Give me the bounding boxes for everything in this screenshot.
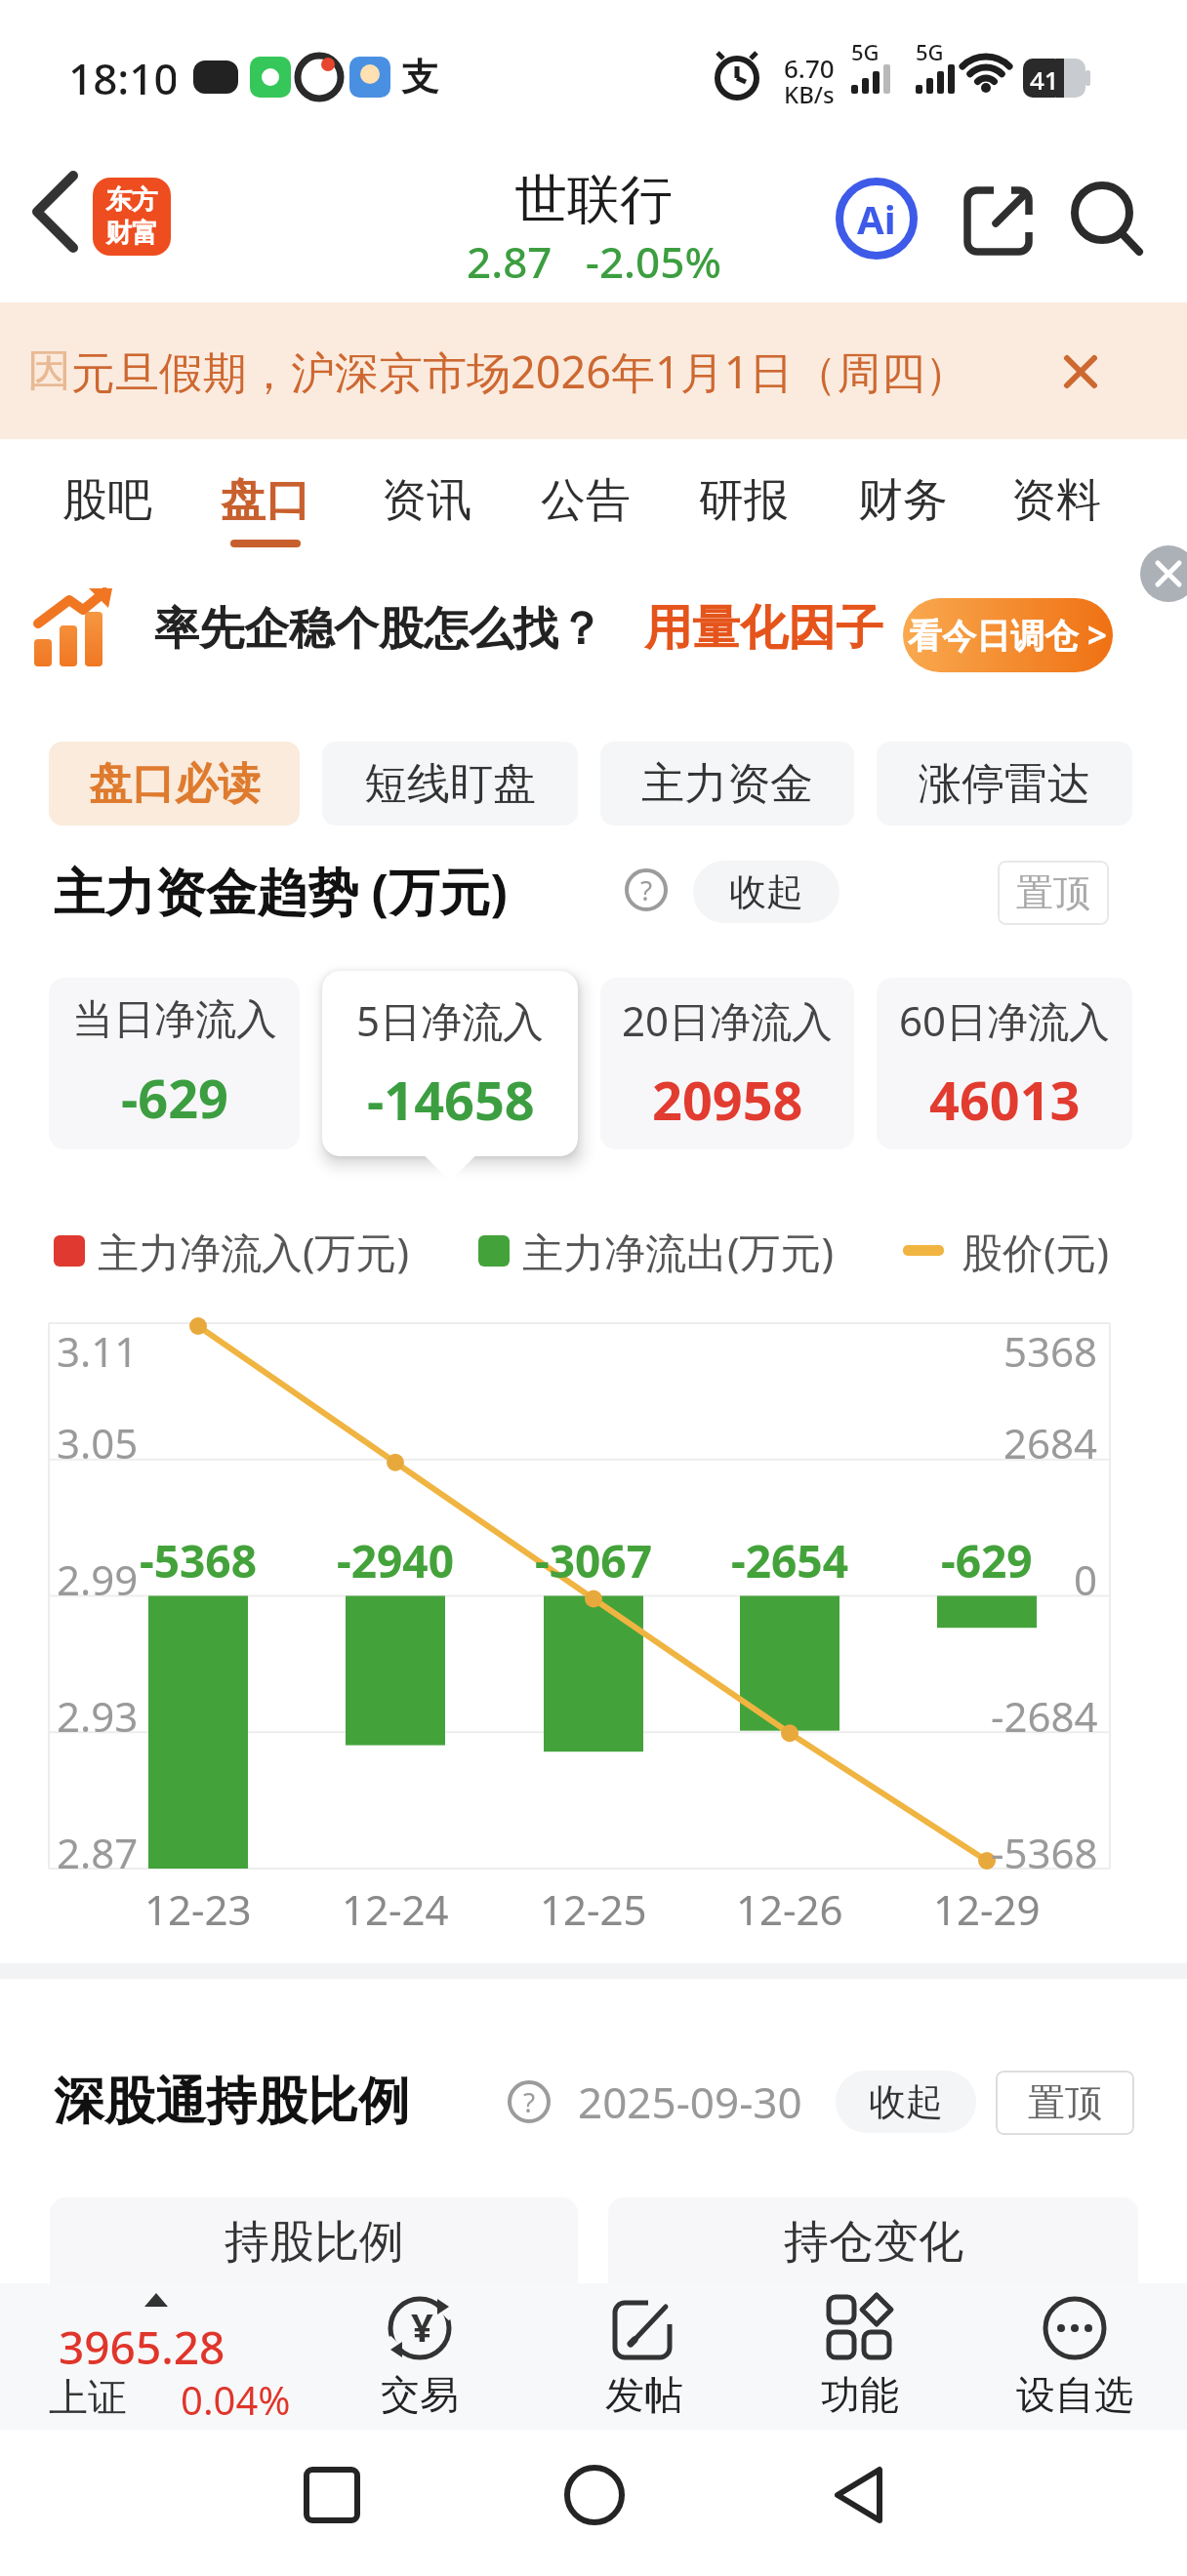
staticText: -14658 bbox=[367, 1064, 535, 1136]
staticText: 元旦假期，沪深京市场2026年1月1日（周四） bbox=[71, 342, 969, 400]
staticText: 3.05 bbox=[57, 1415, 139, 1466]
staticText: -629 bbox=[941, 1530, 1033, 1583]
staticText: 收起 bbox=[729, 868, 803, 915]
staticText: 涨停雷达 bbox=[919, 757, 1090, 811]
button[interactable]: 收起 bbox=[693, 861, 839, 923]
staticText: 5G bbox=[916, 37, 944, 60]
staticText: 2.99 bbox=[57, 1551, 139, 1602]
button[interactable] bbox=[964, 185, 1037, 258]
button[interactable] bbox=[1140, 545, 1187, 602]
staticText: 研报 bbox=[699, 472, 789, 529]
staticText: 12-25 bbox=[540, 1881, 647, 1932]
staticText: -2940 bbox=[337, 1530, 454, 1583]
staticText: 资料 bbox=[1011, 472, 1101, 529]
button[interactable]: 5日净流入 bbox=[322, 971, 578, 1156]
button[interactable] bbox=[283, 2449, 381, 2547]
button[interactable]: 当日净流入 bbox=[49, 978, 300, 1149]
button[interactable]: 财务 bbox=[830, 439, 976, 561]
staticText: 看今日调仓 > bbox=[908, 612, 1108, 659]
staticText: 3.11 bbox=[57, 1323, 139, 1374]
staticText: 0.04% bbox=[181, 2373, 291, 2420]
staticText: 6.70 bbox=[784, 51, 835, 80]
button[interactable]: 率先企稳个股怎么找？ bbox=[0, 561, 1187, 717]
staticText: -5368 bbox=[140, 1530, 257, 1583]
staticText: 置顶 bbox=[1016, 869, 1090, 916]
staticText: 东方 bbox=[105, 183, 158, 217]
button[interactable]: 盘口 bbox=[192, 439, 339, 561]
button[interactable]: 公告 bbox=[512, 439, 659, 561]
staticText: 18:10 bbox=[68, 49, 176, 103]
staticText: 2684 bbox=[1003, 1415, 1098, 1466]
staticText: 0 bbox=[1074, 1551, 1098, 1602]
staticText: 12-26 bbox=[736, 1881, 843, 1932]
staticText: 股价(元) bbox=[962, 1224, 1110, 1279]
staticText: 2.87 bbox=[57, 1825, 139, 1875]
button[interactable]: 因 bbox=[0, 302, 1187, 439]
button[interactable]: 发帖 bbox=[566, 2283, 722, 2430]
staticText: 公告 bbox=[541, 472, 631, 529]
staticText: 12-23 bbox=[144, 1881, 252, 1932]
staticText: KB/s bbox=[784, 78, 835, 105]
button[interactable]: 盘口必读 bbox=[49, 742, 300, 825]
button[interactable]: ¥ bbox=[342, 2283, 498, 2430]
button[interactable]: 持仓变化 bbox=[608, 2197, 1138, 2295]
staticText: 5368 bbox=[1003, 1323, 1098, 1374]
staticText: -3067 bbox=[535, 1530, 652, 1583]
staticText: Ai bbox=[857, 192, 896, 245]
staticText: 20日净流入 bbox=[622, 992, 834, 1048]
staticText: ? bbox=[523, 2083, 536, 2120]
staticText: 5日净流入 bbox=[356, 992, 545, 1048]
staticText: 12-24 bbox=[342, 1881, 449, 1932]
staticText: 短线盯盘 bbox=[364, 757, 536, 811]
staticText: 2.87 -2.05% bbox=[467, 232, 721, 287]
button[interactable]: 功能 bbox=[782, 2283, 938, 2430]
button[interactable]: 东方 bbox=[93, 178, 171, 256]
staticText: 主力资金趋势 (万元) bbox=[54, 856, 508, 925]
staticText: 收起 bbox=[869, 2078, 943, 2125]
staticText: 持股比例 bbox=[225, 2214, 404, 2271]
button[interactable]: 20日净流入 bbox=[600, 978, 854, 1149]
staticText: 因 bbox=[27, 343, 71, 399]
staticText: 主力净流入(万元) bbox=[98, 1224, 410, 1279]
staticText: 5G bbox=[851, 37, 880, 60]
staticText: ¥ bbox=[411, 2300, 433, 2353]
button[interactable]: 设自选 bbox=[997, 2283, 1153, 2430]
staticText: 资讯 bbox=[382, 472, 471, 529]
staticText: 深股通持股比例 bbox=[54, 2070, 409, 2134]
staticText: 财富 bbox=[105, 217, 158, 250]
staticText: 主力净流出(万元) bbox=[522, 1224, 835, 1279]
staticText: 财务 bbox=[858, 472, 948, 529]
staticText: 支 bbox=[401, 54, 438, 101]
button[interactable] bbox=[547, 2449, 644, 2547]
button[interactable]: 看今日调仓 > bbox=[903, 598, 1113, 672]
button[interactable]: 60日净流入 bbox=[877, 978, 1132, 1149]
button[interactable]: 股吧 bbox=[34, 439, 181, 561]
staticText: 世联行 bbox=[514, 167, 673, 233]
button[interactable]: 涨停雷达 bbox=[877, 742, 1132, 825]
button[interactable]: 收起 bbox=[836, 2071, 976, 2133]
staticText: 2025-09-30 bbox=[578, 2073, 802, 2131]
button[interactable]: 资料 bbox=[983, 439, 1129, 561]
staticText: -2684 bbox=[991, 1688, 1098, 1739]
staticText: ? bbox=[640, 871, 653, 908]
button[interactable]: 研报 bbox=[671, 439, 817, 561]
button[interactable] bbox=[20, 156, 98, 263]
staticText: 交易 bbox=[381, 2370, 459, 2419]
button[interactable] bbox=[810, 2449, 908, 2547]
button[interactable] bbox=[1069, 181, 1147, 260]
button[interactable]: 持股比例 bbox=[50, 2197, 578, 2295]
staticText: 设自选 bbox=[1016, 2370, 1133, 2419]
staticText: -629 bbox=[121, 1062, 228, 1134]
staticText: 3965.28 bbox=[59, 2316, 225, 2367]
staticText: -5368 bbox=[991, 1825, 1098, 1875]
button[interactable]: 主力资金 bbox=[600, 742, 854, 825]
button[interactable]: 资讯 bbox=[353, 439, 500, 561]
button[interactable]: 3965.28 bbox=[0, 2283, 332, 2430]
staticText: 41 bbox=[1030, 62, 1059, 94]
button[interactable]: Ai bbox=[836, 178, 918, 260]
staticText: 持仓变化 bbox=[784, 2214, 963, 2271]
staticText: 当日净流入 bbox=[72, 994, 277, 1046]
button[interactable]: 置顶 bbox=[998, 861, 1109, 925]
button[interactable]: 短线盯盘 bbox=[322, 742, 578, 825]
button[interactable]: 置顶 bbox=[996, 2071, 1134, 2135]
